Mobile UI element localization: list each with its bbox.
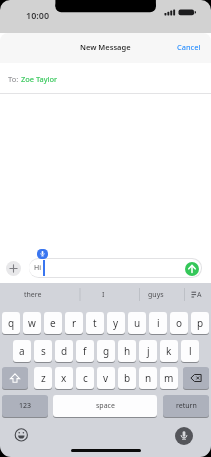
- button[interactable]: [183, 367, 209, 389]
- staticText: s: [41, 344, 46, 358]
- button[interactable]: w: [23, 312, 41, 334]
- staticText: c: [83, 371, 88, 385]
- button[interactable]: j: [139, 340, 157, 362]
- button[interactable]: To:: [0, 63, 211, 94]
- button[interactable]: k: [160, 340, 178, 362]
- button[interactable]: [175, 427, 193, 445]
- staticText: guys: [148, 290, 164, 300]
- button[interactable]: a: [13, 340, 31, 362]
- staticText: A: [197, 290, 202, 300]
- button[interactable]: Cancel: [177, 42, 201, 52]
- staticText: d: [61, 344, 68, 358]
- staticText: f: [83, 344, 87, 358]
- button[interactable]: [2, 367, 28, 389]
- button[interactable]: s: [34, 340, 52, 362]
- staticText: q: [8, 316, 15, 330]
- button[interactable]: g: [97, 340, 115, 362]
- button[interactable]: [6, 261, 21, 276]
- staticText: t: [93, 316, 97, 330]
- staticText: Cancel: [177, 42, 201, 52]
- staticText: z: [41, 371, 46, 385]
- staticText: v: [103, 371, 109, 385]
- button[interactable]: z: [34, 367, 52, 389]
- button[interactable]: space: [53, 395, 157, 417]
- button[interactable]: m: [160, 367, 178, 389]
- button[interactable]: f: [76, 340, 94, 362]
- staticText: space: [96, 401, 115, 411]
- button[interactable]: c: [76, 367, 94, 389]
- staticText: j: [147, 344, 150, 358]
- button[interactable]: l: [181, 340, 199, 362]
- button[interactable]: return: [163, 395, 209, 417]
- button[interactable]: b: [118, 367, 136, 389]
- staticText: Hi: [34, 263, 41, 273]
- button[interactable]: n: [139, 367, 157, 389]
- button[interactable]: p: [191, 312, 209, 334]
- button[interactable]: v: [97, 367, 115, 389]
- staticText: i: [157, 316, 160, 330]
- button[interactable]: h: [118, 340, 136, 362]
- staticText: u: [134, 316, 141, 330]
- button[interactable]: x: [55, 367, 73, 389]
- staticText: w: [28, 316, 36, 330]
- staticText: r: [72, 316, 77, 330]
- button[interactable]: u: [128, 312, 146, 334]
- button[interactable]: o: [170, 312, 188, 334]
- button[interactable]: e: [44, 312, 62, 334]
- staticText: g: [103, 344, 110, 358]
- staticText: I: [102, 290, 105, 300]
- staticText: b: [124, 371, 131, 385]
- button[interactable]: t: [86, 312, 104, 334]
- staticText: y: [113, 316, 119, 330]
- staticText: n: [145, 371, 152, 385]
- staticText: p: [197, 316, 204, 330]
- button[interactable]: i: [149, 312, 167, 334]
- button[interactable]: q: [2, 312, 20, 334]
- button[interactable]: [185, 262, 199, 276]
- staticText: there: [24, 290, 42, 300]
- staticText: return: [176, 401, 197, 411]
- button[interactable]: y: [107, 312, 125, 334]
- button[interactable]: r: [65, 312, 83, 334]
- staticText: 123: [19, 401, 32, 411]
- staticText: x: [61, 371, 67, 385]
- staticText: m: [164, 371, 174, 385]
- staticText: h: [124, 344, 131, 358]
- button[interactable]: [12, 426, 30, 444]
- staticText: 10:00: [26, 9, 50, 21]
- staticText: l: [189, 344, 192, 358]
- staticText: e: [50, 316, 56, 330]
- staticText: New Message: [80, 42, 131, 52]
- staticText: a: [19, 344, 25, 358]
- staticText: Zoe Taylor: [21, 74, 58, 84]
- button[interactable]: d: [55, 340, 73, 362]
- staticText: o: [176, 316, 183, 330]
- button[interactable]: 123: [2, 395, 48, 417]
- staticText: k: [166, 344, 172, 358]
- staticText: To:: [8, 74, 21, 84]
